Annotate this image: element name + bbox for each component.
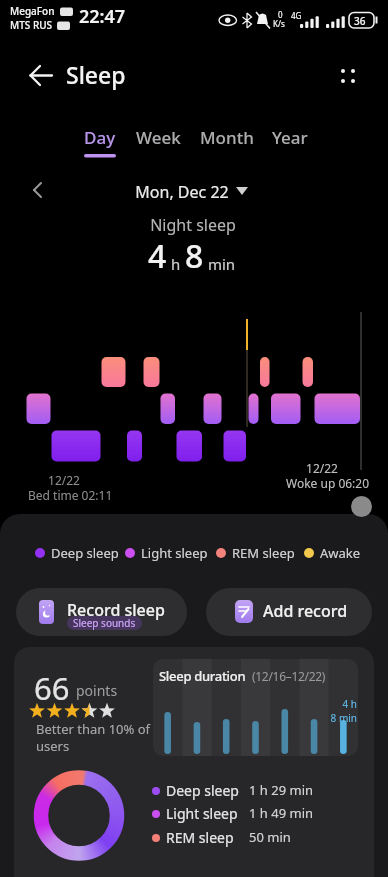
staticText: Better than 10% of	[36, 720, 151, 738]
staticText: Record sleep	[67, 599, 165, 621]
staticText: Add record	[263, 600, 348, 622]
staticText: 36	[354, 14, 366, 28]
staticText: 8	[185, 234, 204, 278]
staticText: 1 h 49 min	[249, 804, 314, 822]
staticText: 4	[148, 234, 167, 278]
staticText: min	[204, 254, 236, 274]
staticText: 12/22	[306, 460, 338, 476]
staticText: h	[167, 254, 185, 274]
staticText: Awake	[320, 544, 361, 562]
staticText: REM sleep	[166, 828, 234, 847]
staticText: Light sleep	[141, 544, 208, 562]
staticText: 66	[34, 667, 70, 709]
button[interactable]: Year	[272, 126, 308, 149]
staticText: MTS RUS	[10, 18, 53, 32]
staticText: Sleep	[66, 59, 126, 90]
staticText: users	[36, 737, 70, 755]
staticText: Woke up 06:20	[286, 475, 370, 491]
staticText: points	[76, 681, 118, 700]
staticText: 50 min	[249, 828, 291, 846]
staticText: 4G	[291, 10, 302, 21]
staticText: Sleep duration	[159, 667, 246, 685]
staticText: Bed time 02:11	[28, 487, 113, 503]
staticText: Night sleep	[150, 214, 236, 236]
staticText: 22:47	[79, 4, 126, 29]
staticText: 0	[278, 9, 283, 20]
staticText: 1 h 29 min	[249, 781, 314, 799]
staticText: (12/16–12/22)	[252, 668, 326, 684]
staticText: 12/22	[48, 472, 80, 488]
staticText: MegaFon	[10, 4, 55, 18]
button[interactable]: Month	[200, 126, 254, 149]
button[interactable]: Add record	[206, 588, 372, 636]
staticText: Sleep sounds	[73, 616, 136, 630]
staticText: Week	[136, 126, 181, 149]
button[interactable]: Record sleep	[16, 588, 187, 636]
button[interactable]	[130, 180, 250, 202]
staticText: REM sleep	[232, 544, 295, 562]
staticText: Deep sleep	[51, 544, 119, 562]
staticText: K/s	[273, 18, 285, 29]
staticText: Day	[84, 126, 116, 149]
staticText: Mon, Dec 22	[135, 181, 229, 203]
staticText: Year	[272, 126, 308, 149]
button[interactable]: Week	[136, 126, 181, 149]
staticText: Month	[200, 126, 254, 149]
staticText: 4 h	[342, 697, 357, 711]
button[interactable]: Day	[84, 126, 116, 149]
staticText: 8 min	[330, 711, 357, 725]
staticText: Light sleep	[166, 804, 238, 823]
staticText: Deep sleep	[166, 781, 239, 800]
